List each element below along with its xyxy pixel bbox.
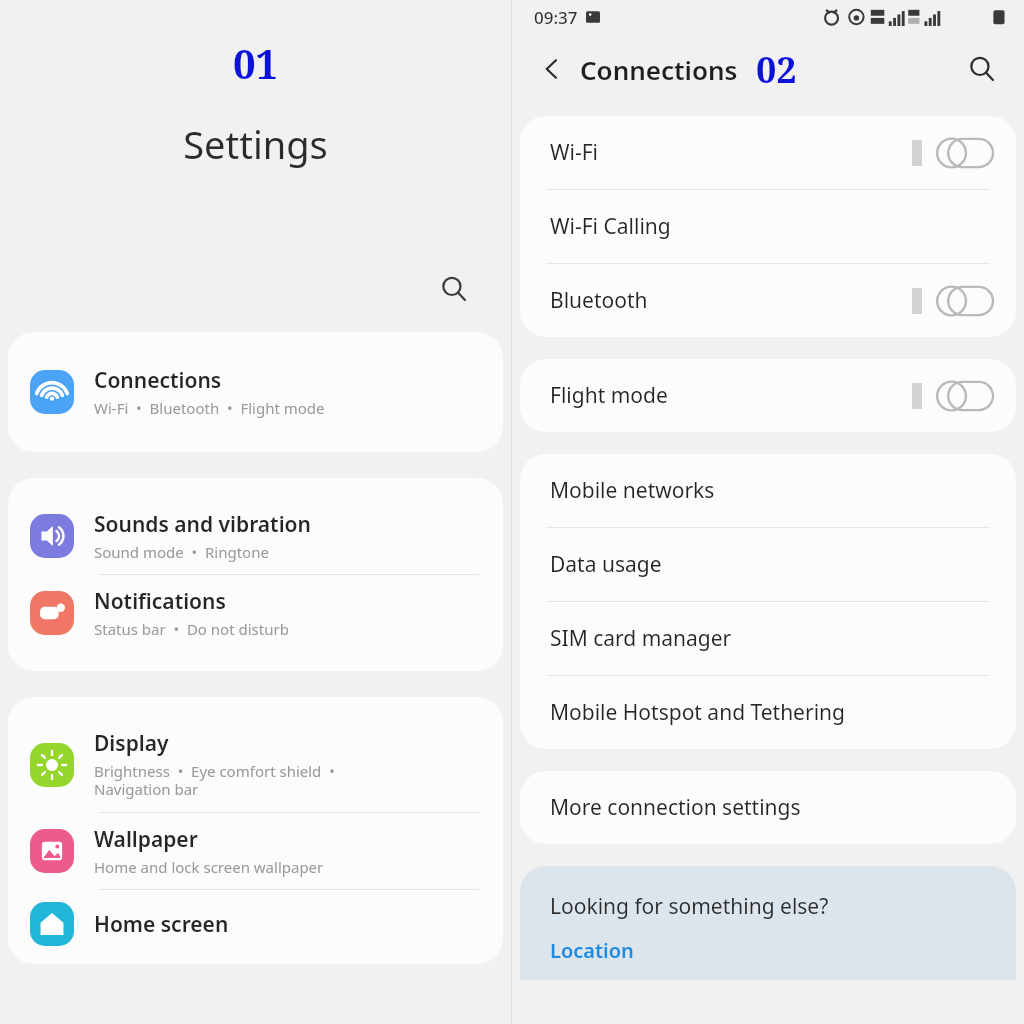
staticText: Home screen — [94, 910, 229, 939]
staticText: SIM card manager — [550, 624, 994, 653]
staticText: Sounds and vibration — [94, 510, 311, 539]
staticText: Bluetooth — [550, 286, 912, 315]
button[interactable]: Display — [8, 717, 503, 812]
staticText: Data usage — [550, 550, 994, 579]
button[interactable]: Flight mode toggle — [936, 379, 994, 413]
button[interactable]: Sounds and vibration — [8, 498, 503, 574]
button[interactable]: Bluetooth — [520, 264, 1016, 337]
staticText: Mobile networks — [550, 476, 994, 505]
button[interactable]: Bluetooth toggle — [936, 284, 994, 318]
button[interactable]: Wallpaper — [8, 813, 503, 889]
button[interactable]: Mobile networks — [520, 454, 1016, 527]
staticText: Connections — [94, 366, 222, 395]
staticText: Wi-Fi Calling — [550, 212, 994, 241]
button[interactable]: Wi-Fi — [520, 116, 1016, 189]
staticText: Wallpaper — [94, 825, 198, 854]
button[interactable]: Wi-Fi toggle — [936, 136, 994, 170]
button[interactable]: Search — [960, 47, 1004, 91]
staticText: Home and lock screen wallpaper — [94, 857, 324, 877]
button[interactable]: Flight mode — [520, 359, 1016, 432]
button[interactable]: Location — [550, 937, 634, 964]
staticText: Notifications — [94, 587, 226, 616]
button[interactable]: More connection settings — [520, 771, 1016, 844]
staticText: Flight mode — [550, 381, 912, 410]
staticText: Display — [94, 729, 169, 758]
staticText: Brightness • Eye comfort shield • Naviga… — [94, 761, 335, 800]
staticText: Status bar • Do not disturb — [94, 619, 289, 639]
staticText: Looking for something else? — [550, 892, 829, 921]
button[interactable]: Data usage — [520, 528, 1016, 601]
staticText: Sound mode • Ringtone — [94, 542, 269, 562]
staticText: 02 — [756, 45, 797, 94]
staticText: Mobile Hotspot and Tethering — [550, 698, 994, 727]
button[interactable]: Notifications — [8, 575, 503, 651]
staticText: 09:37 — [534, 6, 578, 29]
button[interactable]: Mobile Hotspot and Tethering — [520, 676, 1016, 749]
staticText: Location — [550, 937, 634, 964]
button[interactable]: Search — [431, 266, 477, 312]
staticText: More connection settings — [550, 793, 994, 822]
staticText: Wi-Fi — [550, 138, 912, 167]
staticText: Settings — [0, 118, 511, 170]
staticText: Wi-Fi • Bluetooth • Flight mode — [94, 398, 325, 418]
button[interactable]: Home screen — [8, 890, 503, 958]
button[interactable]: Back — [530, 47, 574, 91]
button[interactable]: Wi-Fi Calling — [520, 190, 1016, 263]
button[interactable]: Connections — [8, 354, 503, 430]
button[interactable]: SIM card manager — [520, 602, 1016, 675]
staticText: 01 — [0, 36, 511, 90]
staticText: Connections — [580, 52, 738, 87]
